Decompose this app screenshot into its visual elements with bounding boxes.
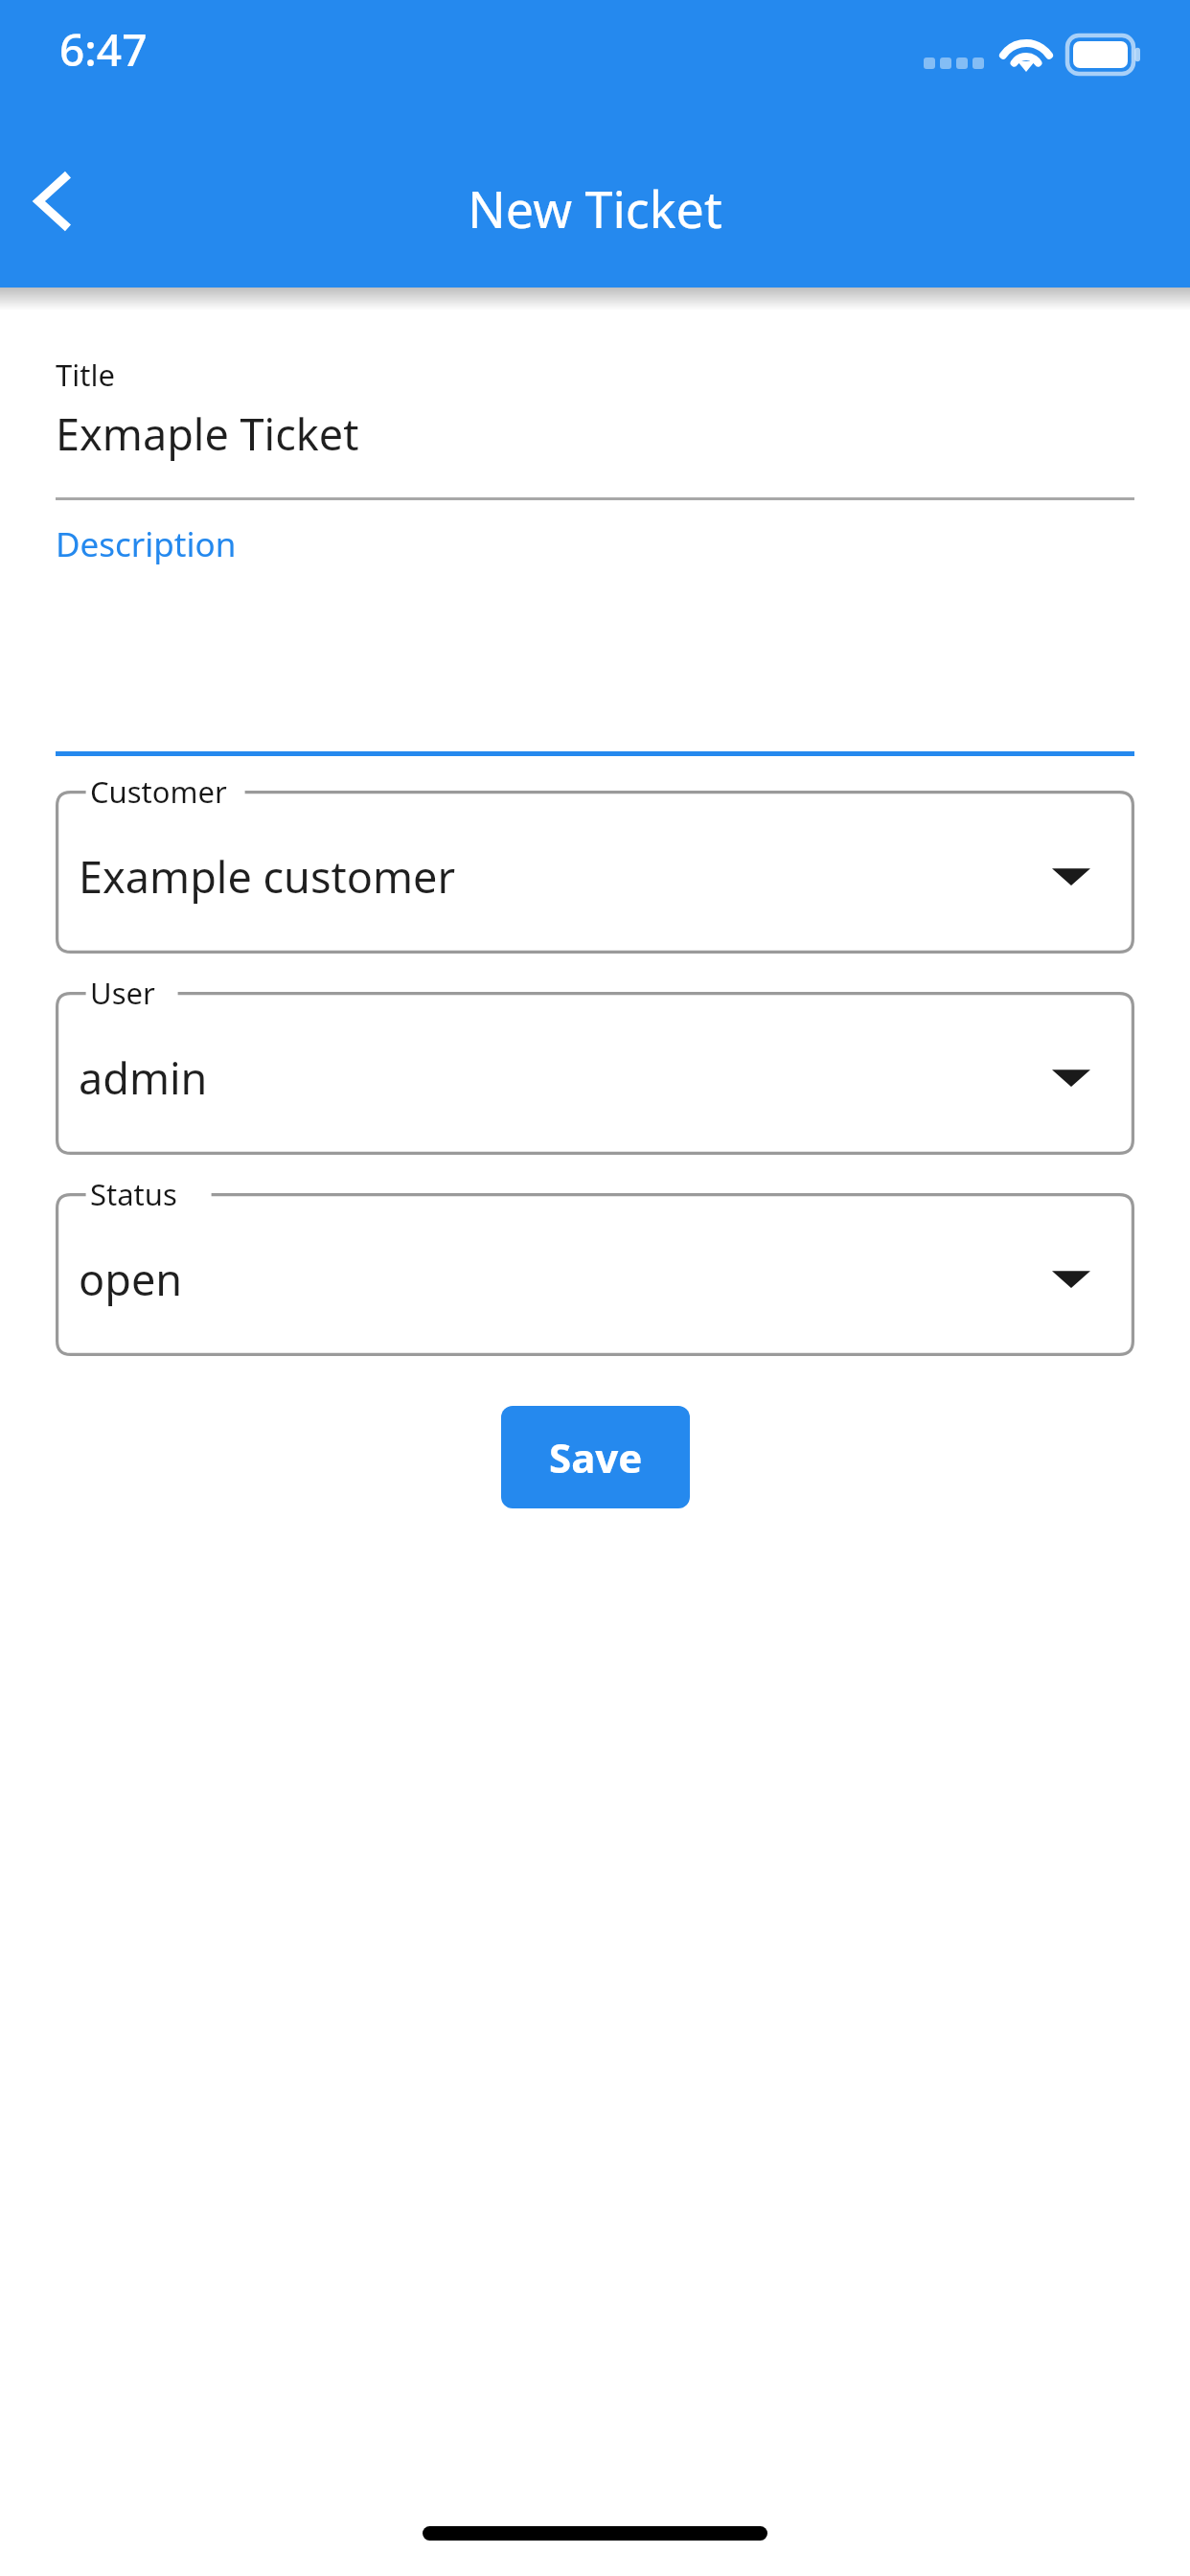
staticText: admin: [79, 1048, 208, 1107]
staticText: New Ticket: [0, 174, 1190, 242]
staticText: 6:47: [59, 19, 148, 80]
button[interactable]: Save: [501, 1406, 690, 1508]
button[interactable]: Customer: [56, 791, 1134, 954]
staticText: Example customer: [79, 847, 455, 906]
button[interactable]: User: [56, 992, 1134, 1155]
staticText: Status: [90, 1174, 177, 1214]
staticText: Save: [549, 1430, 643, 1484]
staticText: open: [79, 1250, 183, 1308]
other: Open Customer dropdown: [1052, 863, 1090, 888]
button[interactable]: Description: [56, 521, 237, 567]
staticText: User: [90, 973, 155, 1013]
other: Open User dropdown: [1052, 1065, 1090, 1090]
button[interactable]: Status: [56, 1193, 1134, 1356]
other: Open Status dropdown: [1052, 1266, 1090, 1291]
button[interactable]: Exmaple Ticket: [56, 404, 359, 463]
button[interactable]: Back: [4, 153, 100, 249]
staticText: Customer: [90, 771, 227, 812]
staticText: Title: [56, 355, 115, 395]
